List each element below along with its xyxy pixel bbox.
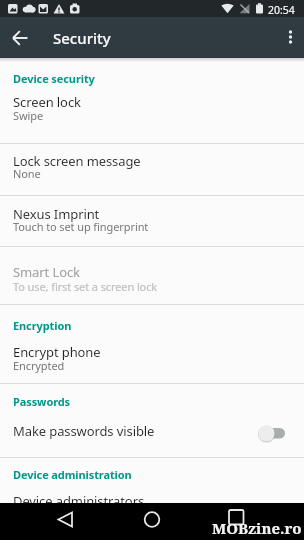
staticText: Smart Lock — [13, 263, 80, 281]
staticText: Security — [53, 28, 111, 48]
staticText: Passwords — [13, 394, 71, 409]
button[interactable]: Device administrators — [0, 481, 304, 503]
staticText: Swipe — [13, 108, 43, 123]
button[interactable]: Encrypt phone — [0, 330, 304, 383]
staticText: Lock screen message — [13, 152, 141, 170]
staticText: MOBzine.ro — [212, 518, 302, 538]
staticText: Nexus Imprint — [13, 205, 100, 223]
button[interactable] — [4, 21, 36, 53]
button[interactable]: Smart Lock — [0, 246, 304, 304]
button[interactable]: Make passwords visible — [0, 414, 304, 457]
staticText: Encrypted — [13, 358, 65, 373]
staticText: Encrypt phone — [13, 343, 101, 361]
button[interactable]: Screen lock — [0, 90, 304, 143]
staticText: Encryption — [13, 318, 72, 333]
staticText: Touch to set up fingerprint — [13, 219, 149, 234]
button[interactable] — [45, 503, 85, 540]
staticText: Screen lock — [13, 93, 81, 111]
staticText: Make passwords visible — [13, 422, 155, 440]
staticText: Device administration — [13, 467, 132, 482]
staticText: 20:54 — [268, 3, 295, 17]
staticText: To use, first set a screen lock — [13, 279, 158, 294]
button[interactable]: Nexus Imprint — [0, 195, 304, 246]
staticText: Device administrators — [13, 492, 145, 510]
button[interactable]: Lock screen message — [0, 143, 304, 195]
staticText: Device security — [13, 71, 95, 86]
button[interactable] — [276, 22, 304, 50]
button[interactable] — [216, 503, 256, 540]
button[interactable] — [132, 503, 172, 540]
staticText: None — [13, 166, 41, 181]
